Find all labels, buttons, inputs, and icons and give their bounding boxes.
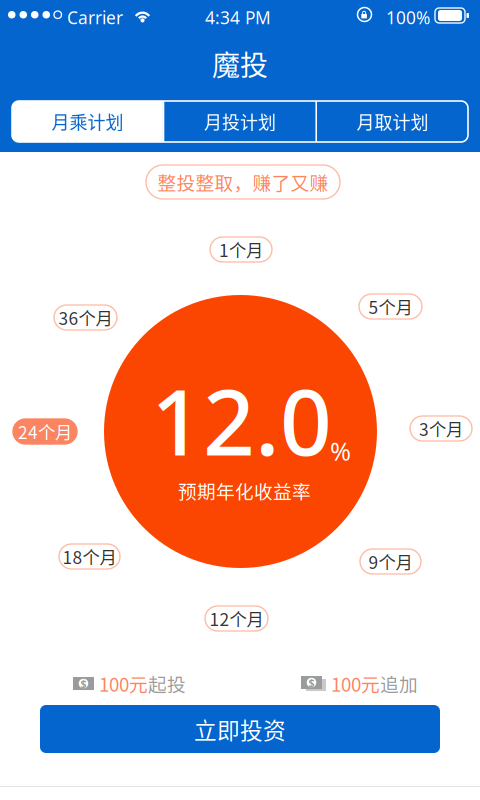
button[interactable]: 18个月 [59,544,120,569]
button[interactable]: 1个月 [210,237,272,262]
staticText: $ [308,675,314,690]
button[interactable]: 月取计划 [317,101,468,142]
staticText: 5个月 [368,294,412,319]
staticText: 起投 [148,670,186,697]
staticText: 100元 [331,670,380,697]
staticText: $ [80,676,86,691]
staticText: % [330,434,351,468]
button[interactable]: 月乘计划 [12,101,163,142]
staticText: 12.0 [151,360,332,480]
staticText: 18个月 [62,544,116,569]
staticText: 立即投资 [194,713,286,745]
button[interactable]: 36个月 [54,305,117,330]
staticText: 100元 [99,670,148,697]
staticText: 24个月 [18,419,72,444]
button[interactable]: 月投计划 [165,101,315,142]
staticText: 整投整取，赚了又赚 [157,168,328,195]
button[interactable]: 立即投资 [40,705,440,753]
staticText: 36个月 [58,305,112,330]
staticText: 月投计划 [204,108,276,135]
button[interactable]: 9个月 [360,549,421,574]
button[interactable]: 5个月 [359,294,422,319]
staticText: 4:34 PM [205,6,271,29]
staticText: 预期年化收益率 [178,477,311,504]
staticText: 追加 [380,670,418,697]
staticText: 月乘计划 [51,108,123,135]
staticText: 12个月 [209,606,263,631]
staticText: 月取计划 [356,108,428,135]
button[interactable]: 12个月 [205,606,268,631]
button[interactable]: 3个月 [410,416,472,441]
button[interactable]: 24个月 [13,419,77,444]
staticText: 3个月 [419,416,463,441]
staticText: 100% [386,6,430,29]
staticText: Carrier [67,6,123,29]
staticText: 1个月 [219,237,263,262]
staticText: 9个月 [368,549,412,574]
staticText: 魔投 [212,43,268,84]
